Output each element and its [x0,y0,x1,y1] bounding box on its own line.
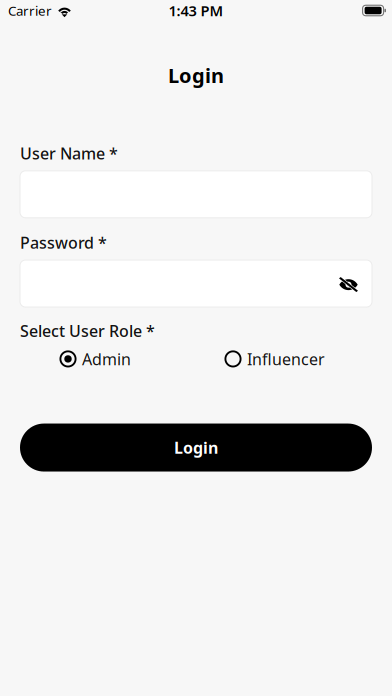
staticText: Password * [20,232,107,253]
staticText: Admin [82,348,131,369]
button[interactable]: Influencer [225,348,325,369]
staticText: Influencer [247,348,325,369]
button[interactable]: Password [20,260,372,307]
button[interactable]: Show password [339,260,372,307]
staticText: Carrier [8,2,52,19]
staticText: Select User Role * [20,320,155,341]
button[interactable]: Login [20,424,372,472]
staticText: 1:43 PM [168,1,223,20]
staticText: Login [174,437,218,458]
staticText: User Name * [20,143,118,164]
button[interactable]: Admin [60,348,131,369]
staticText: Login [168,62,224,89]
